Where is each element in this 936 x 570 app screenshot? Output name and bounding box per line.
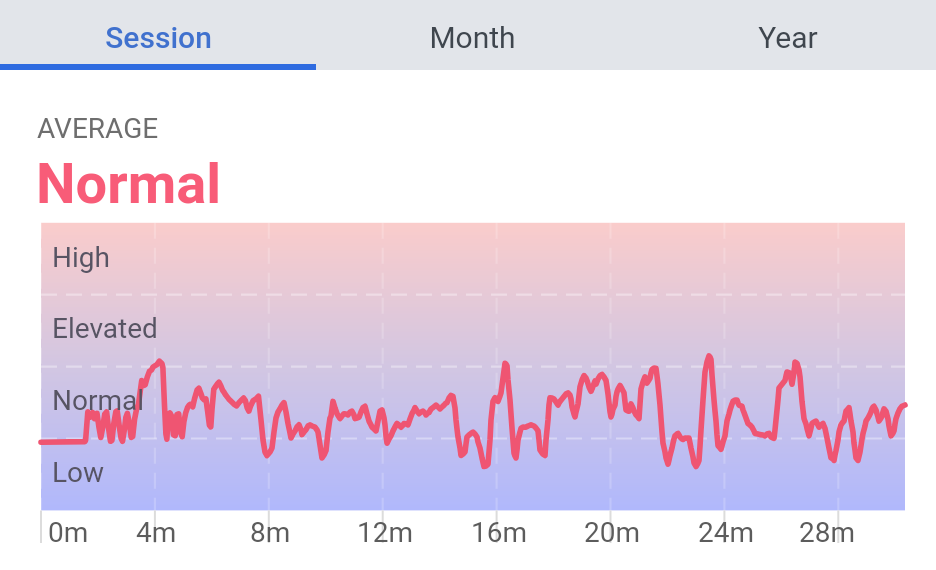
staticText: Session — [105, 20, 212, 55]
staticText: 24m — [698, 516, 755, 549]
staticText: 8m — [250, 516, 291, 549]
staticText: 20m — [584, 516, 641, 549]
button[interactable]: Session — [0, 0, 316, 70]
staticText: 28m — [799, 516, 856, 549]
staticText: Normal — [36, 151, 222, 217]
button[interactable]: Month — [315, 0, 630, 70]
staticText: Normal — [52, 384, 145, 417]
staticText: Elevated — [52, 312, 158, 345]
staticText: Month — [429, 20, 516, 55]
staticText: 4m — [136, 516, 177, 549]
staticText: 0m — [48, 516, 89, 549]
staticText: 12m — [357, 516, 414, 549]
staticText: AVERAGE — [37, 112, 159, 145]
staticText: Low — [52, 456, 105, 489]
staticText: 16m — [471, 516, 528, 549]
button[interactable]: Year — [630, 0, 936, 70]
button[interactable]: Heart rate chart for this session — [41, 223, 905, 511]
staticText: Year — [758, 20, 818, 55]
staticText: High — [52, 241, 110, 274]
